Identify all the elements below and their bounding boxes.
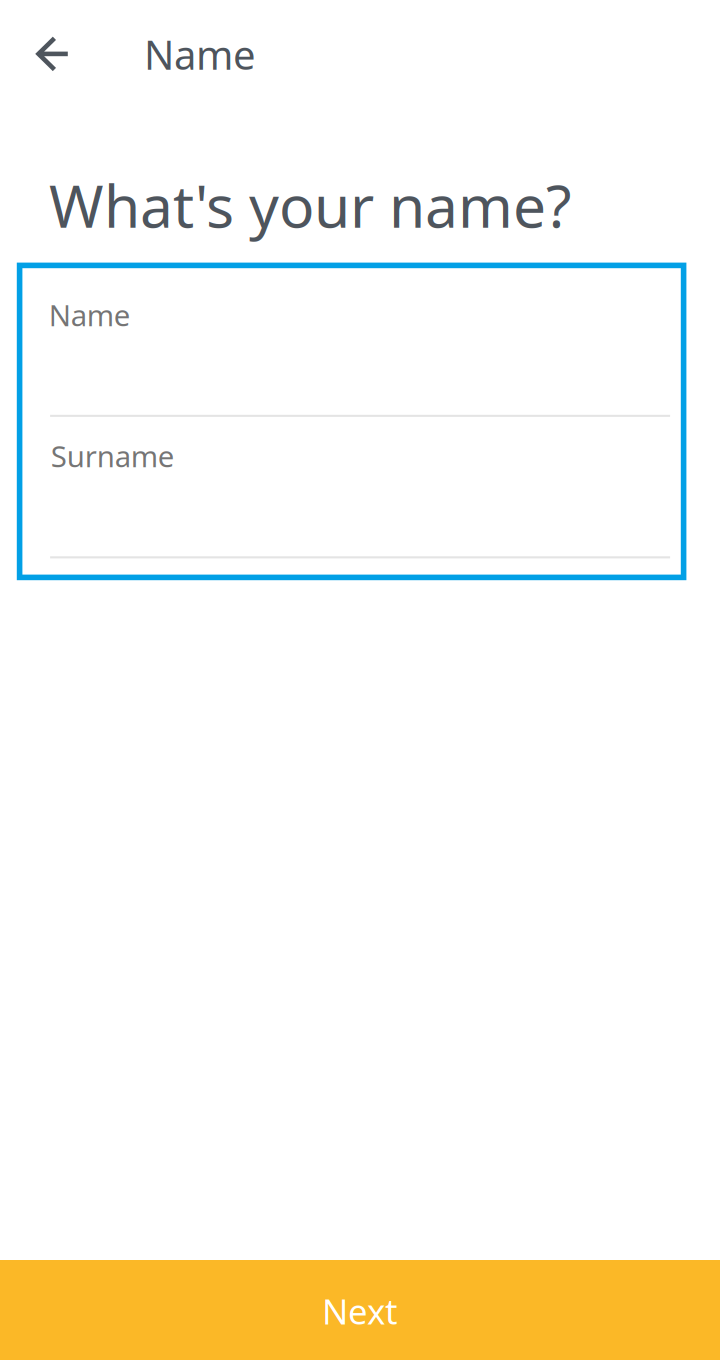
staticText: What's your name? [49,165,571,245]
button[interactable]: Surname [20,407,684,548]
staticText: Name [144,27,256,81]
button[interactable]: Name [20,265,684,407]
staticText: Next [322,1287,398,1335]
staticText: Name [49,295,131,335]
staticText: Surname [51,436,175,476]
button[interactable]: Back [18,18,90,90]
button[interactable]: Next [0,1260,720,1360]
